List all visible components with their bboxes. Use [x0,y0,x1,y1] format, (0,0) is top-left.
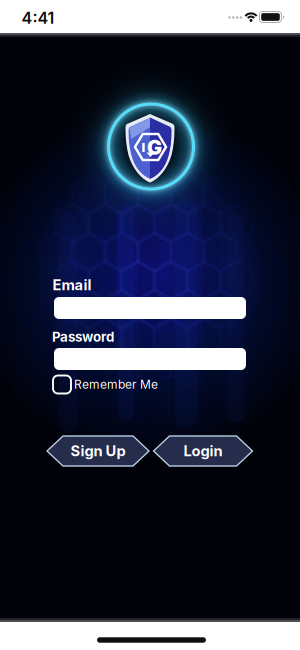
button[interactable]: Sign Up [47,436,149,466]
button[interactable]: Remember Me [53,374,193,394]
button[interactable]: Login [153,436,252,466]
textField[interactable]: Email [66,299,246,317]
textField[interactable]: Password [66,350,246,368]
staticText: Email [52,276,91,294]
staticText: Sign Up [70,442,125,460]
staticText: Password [52,329,114,345]
staticText: Login [183,442,222,460]
staticText: Remember Me [74,377,158,392]
staticText: G [147,136,162,159]
staticText: 4:41 [21,9,54,27]
